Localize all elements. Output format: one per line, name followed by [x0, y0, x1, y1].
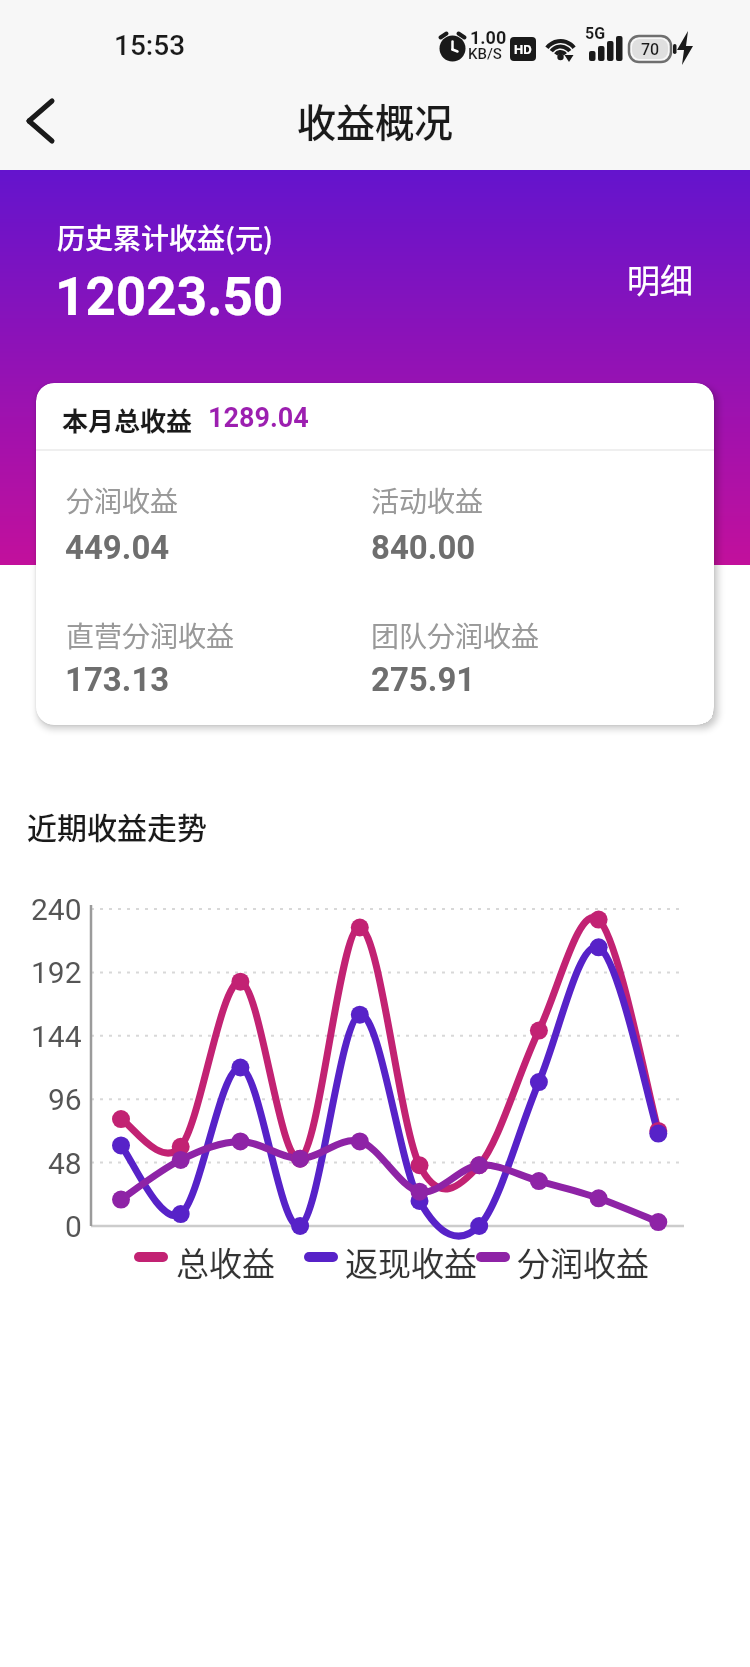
button[interactable] [10, 90, 70, 150]
staticText: 分润收益 [517, 1238, 649, 1286]
staticText: 275.91 [371, 660, 476, 699]
staticText: 分润收益 [66, 480, 179, 521]
staticText: 5G [585, 24, 606, 43]
staticText: 0 [65, 1209, 82, 1244]
staticText: 192 [31, 955, 82, 990]
staticText: 15:53 [114, 29, 186, 62]
staticText: 活动收益 [371, 480, 484, 521]
staticText: 173.13 [65, 660, 170, 699]
button[interactable]: 本月总收益 [36, 383, 714, 725]
staticText: 48 [48, 1146, 82, 1181]
staticText: 240 [31, 892, 82, 927]
staticText: 直营分润收益 [66, 615, 235, 656]
button[interactable]: 明细 [605, 249, 715, 309]
staticText: 总收益 [176, 1238, 275, 1286]
staticText: 144 [31, 1019, 82, 1054]
staticText: 近期收益走势 [27, 804, 207, 847]
staticText: 449.04 [65, 528, 170, 567]
staticText: 本月总收益 [62, 401, 193, 439]
staticText: 历史累计收益(元) [57, 217, 273, 258]
staticText: 96 [48, 1082, 82, 1117]
staticText: 收益概况 [297, 92, 454, 148]
staticText: 1.00 [470, 27, 507, 48]
staticText: 团队分润收益 [371, 615, 540, 656]
staticText: 840.00 [371, 528, 476, 567]
staticText: KB/S [468, 45, 502, 63]
staticText: HD [514, 42, 532, 57]
staticText: 12023.50 [55, 266, 284, 328]
staticText: 返现收益 [345, 1238, 477, 1286]
staticText: 1289.04 [208, 402, 309, 434]
staticText: 明细 [627, 255, 693, 303]
staticText: 70 [641, 40, 660, 59]
